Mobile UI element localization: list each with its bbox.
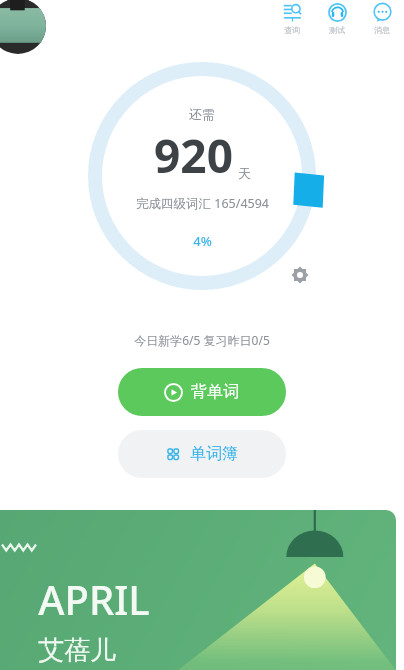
button[interactable]: APRIL (0, 510, 396, 670)
button[interactable]: 消息 (362, 2, 402, 35)
button[interactable]: 测试 (317, 2, 357, 35)
staticText: 4% (193, 232, 212, 250)
staticText: 测试 (329, 25, 345, 35)
staticText: 查询 (284, 25, 300, 35)
staticText: 还需 (189, 106, 215, 122)
button[interactable]: Settings (288, 263, 312, 287)
button[interactable]: 背单词 (118, 368, 286, 416)
staticText: 完成四级词汇 165/4594 (136, 195, 269, 212)
button[interactable]: 单词簿 (118, 430, 286, 478)
staticText: 艾蓓儿 (38, 634, 116, 667)
button[interactable]: 查询 (272, 2, 312, 35)
staticText: 消息 (374, 25, 390, 35)
staticText: 天 (238, 165, 251, 181)
button[interactable]: Profile avatar (0, 0, 46, 54)
staticText: 今日新学6/5 复习昨日0/5 (134, 332, 270, 348)
staticText: APRIL (38, 572, 150, 626)
staticText: 单词簿 (190, 444, 238, 464)
staticText: 背单词 (191, 382, 239, 402)
staticText: 920 (154, 124, 233, 187)
